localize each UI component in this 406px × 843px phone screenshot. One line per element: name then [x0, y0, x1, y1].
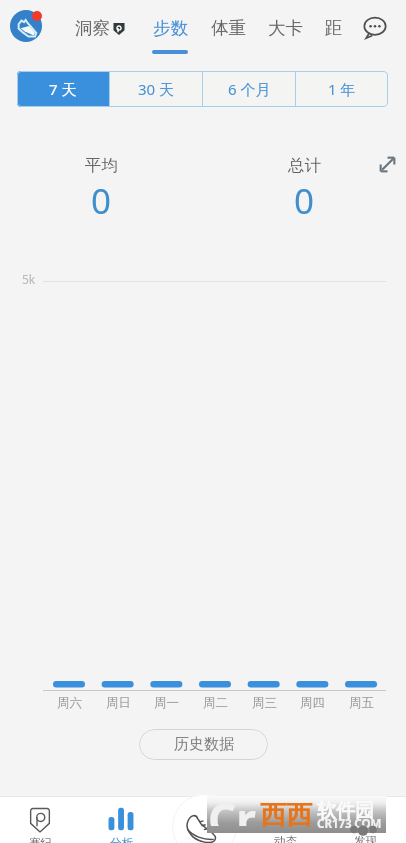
staticText: 大卡 [268, 17, 303, 39]
button[interactable]: 大卡 [260, 4, 311, 56]
button[interactable]: 7 天 [17, 71, 109, 107]
button[interactable]: 历史数据 [139, 729, 268, 760]
staticText: 历史数据 [174, 735, 234, 754]
button[interactable]: 1 年 [296, 71, 388, 107]
staticText: 周四 [300, 695, 325, 711]
staticText: 体重 [211, 17, 246, 39]
staticText: 发现 [354, 834, 377, 843]
button[interactable]: 发现 [335, 797, 395, 843]
button[interactable]: 6 个月 [203, 71, 295, 107]
staticText: 周二 [203, 695, 228, 711]
button[interactable]: 动态 [255, 797, 315, 843]
button[interactable]: 分析 [91, 797, 151, 843]
staticText: 周日 [106, 695, 131, 711]
button[interactable]: Profile [10, 10, 42, 42]
button[interactable]: 30 天 [110, 71, 202, 107]
staticText: 周三 [252, 695, 277, 711]
staticText: 动态 [274, 834, 297, 843]
button[interactable]: 赛纪 [10, 797, 70, 843]
staticText: 周一 [154, 695, 179, 711]
staticText: 分析 [110, 836, 133, 843]
button[interactable]: Messages [358, 10, 392, 44]
staticText: 周六 [57, 695, 82, 711]
button[interactable]: 体重 [203, 4, 254, 56]
staticText: 5k [22, 271, 36, 287]
staticText: 赛纪 [29, 836, 52, 843]
staticText: Cr [208, 789, 256, 826]
staticText: 周五 [349, 695, 374, 711]
button[interactable]: Start activity [172, 794, 237, 843]
staticText: CR173.COM [317, 816, 382, 832]
staticText: 平均 [85, 155, 118, 176]
staticText: 30 天 [138, 79, 175, 99]
staticText: 距 [325, 17, 343, 39]
button[interactable]: 步数 [145, 4, 196, 56]
staticText: 0 [294, 177, 315, 225]
button[interactable]: 距 [317, 4, 351, 56]
staticText: 7 天 [49, 79, 77, 99]
button[interactable]: Expand chart [375, 152, 399, 176]
staticText: 洞察 [75, 17, 110, 39]
staticText: 西西 [260, 799, 312, 832]
button[interactable]: 洞察 [67, 4, 133, 56]
staticText: 0 [91, 177, 112, 225]
staticText: 步数 [153, 17, 188, 39]
staticText: 6 个月 [228, 79, 271, 99]
staticText: 1 年 [328, 79, 356, 99]
staticText: 软件园 [317, 799, 374, 823]
staticText: 总计 [288, 155, 321, 176]
